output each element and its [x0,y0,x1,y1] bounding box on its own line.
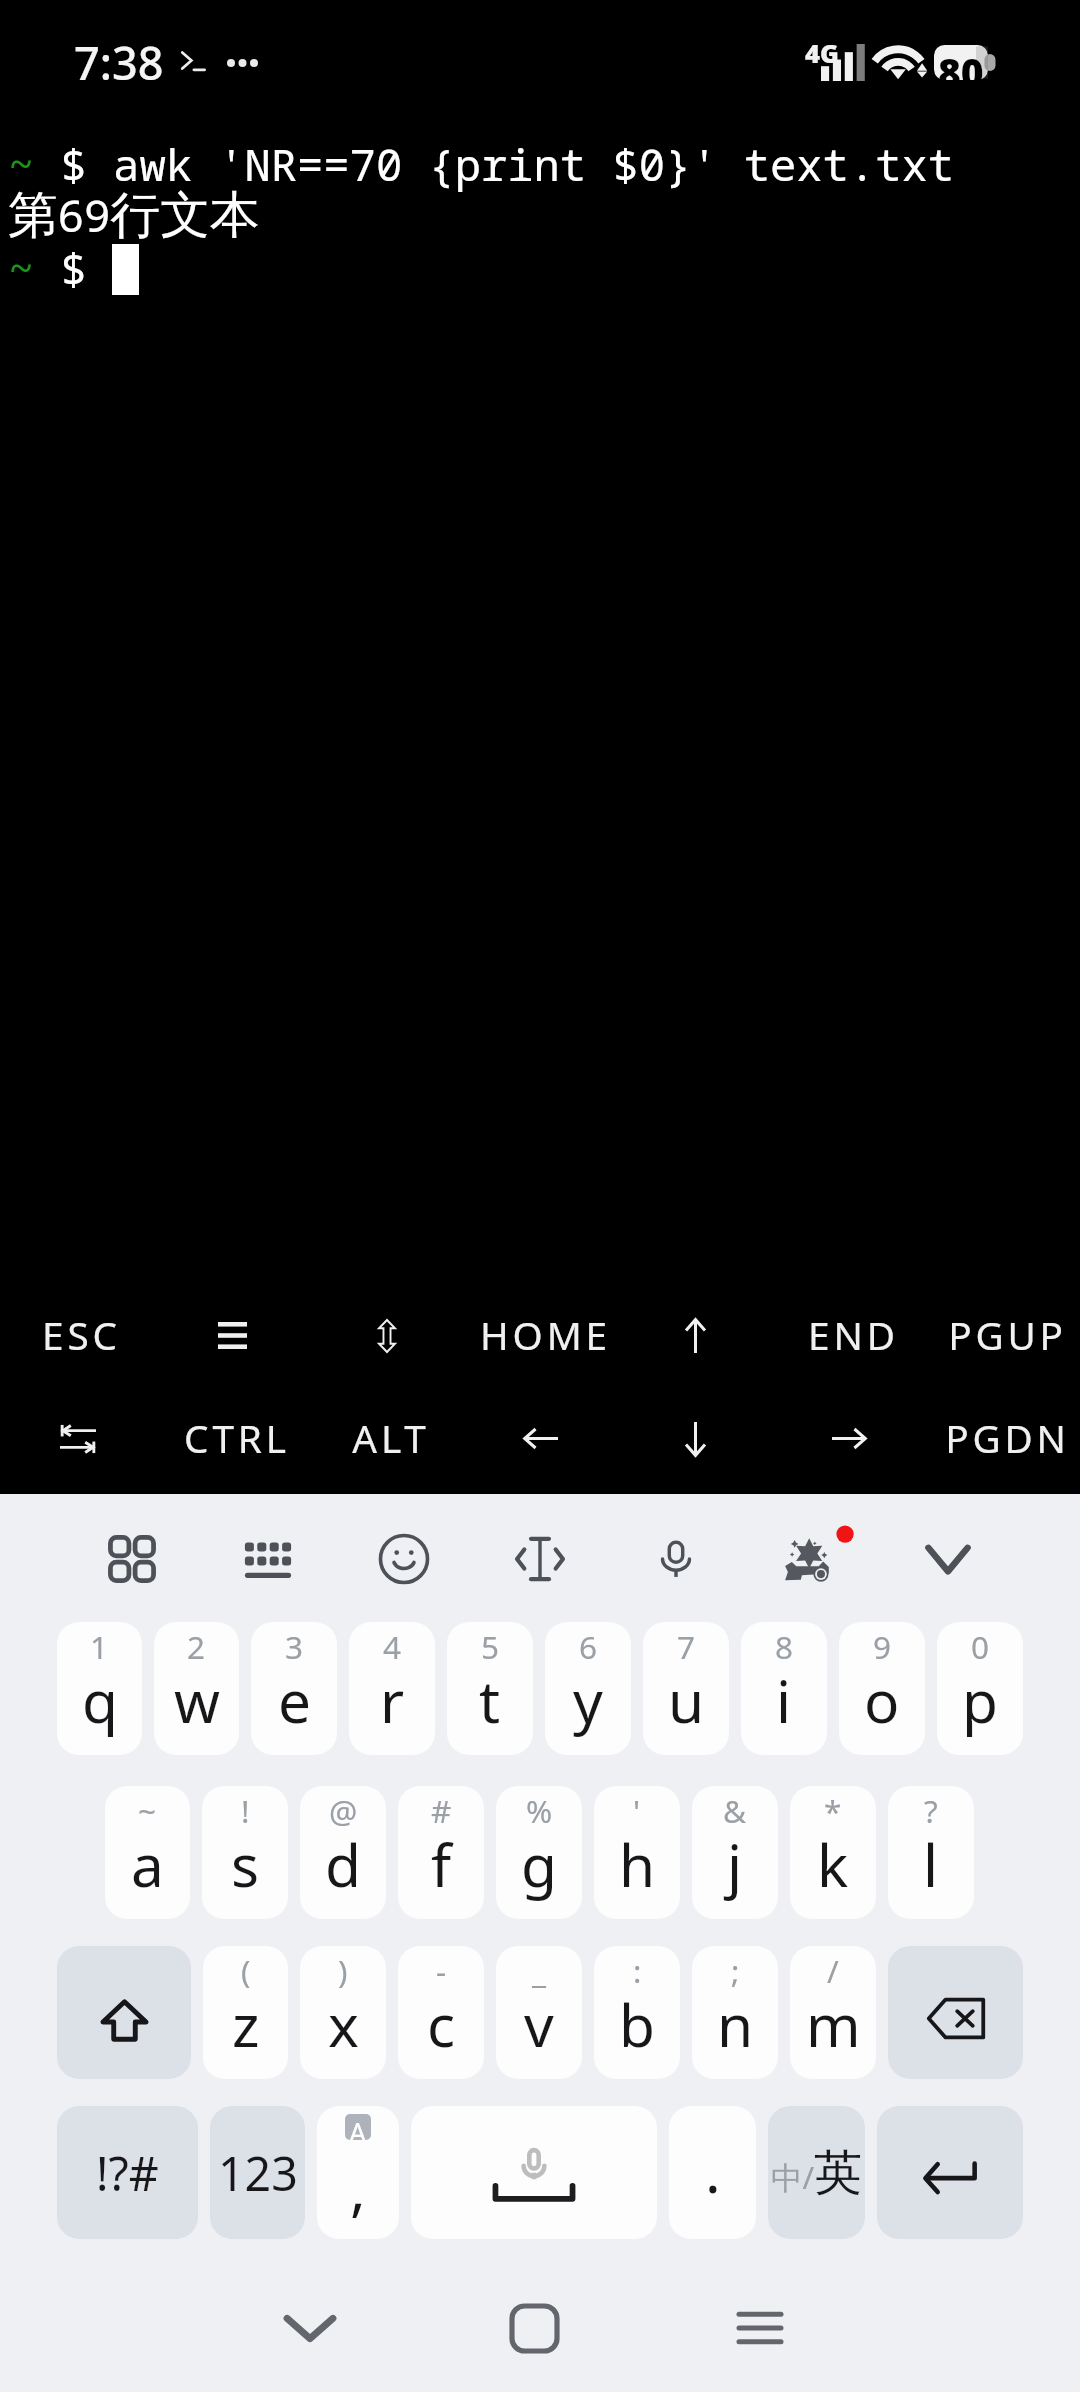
button[interactable]: HOME [464,1284,618,1387]
button[interactable]: Switch language [768,2106,865,2239]
staticText: ( [241,1949,251,1992]
button[interactable]: 123 [210,2106,305,2239]
staticText: ESC [42,1309,121,1362]
button[interactable]: Stickers [744,1494,880,1624]
staticText: : [633,1949,642,1992]
staticText: 4 [383,1625,402,1668]
staticText: - [436,1949,447,1992]
button[interactable]: !?# [57,2106,198,2239]
staticText: 1 [90,1625,109,1668]
button[interactable]: ESC [0,1284,155,1387]
button[interactable]: DOWN [618,1387,772,1490]
staticText: 中/英 [771,2143,863,2203]
button[interactable]: Shift [57,1946,191,2079]
staticText: e [278,1660,311,1740]
button[interactable]: Backspace [888,1946,1023,2079]
button[interactable]: h [594,1786,680,1919]
staticText: h [619,1824,656,1904]
staticText: a [131,1824,164,1904]
staticText: l [923,1824,939,1904]
button[interactable]: m [790,1946,876,2079]
button[interactable]: w [154,1622,239,1755]
staticText: A [349,2114,367,2140]
staticText: k [817,1824,849,1904]
button[interactable]: Apps [64,1494,200,1624]
staticText: ? [924,1789,938,1832]
button[interactable]: j [692,1786,778,1919]
button[interactable]: UPDOWN [310,1284,464,1387]
button[interactable]: n [692,1946,778,2079]
staticText: m [806,1984,861,2064]
staticText: END [808,1309,899,1362]
button[interactable]: y [545,1622,631,1755]
staticText: ~ $ awk 'NR==70 {print $0}' text.txt 第69… [8,134,955,298]
staticText: d [325,1824,361,1904]
button[interactable]: t [447,1622,533,1755]
staticText: b [619,1984,655,2064]
button[interactable]: o [839,1622,925,1755]
staticText: 4G [805,36,839,71]
button[interactable]: v [496,1946,582,2079]
button[interactable]: Space [411,2106,657,2239]
button[interactable]: l [888,1786,974,1919]
button[interactable]: b [594,1946,680,2079]
staticText: ~ [138,1789,157,1832]
staticText: y [573,1660,603,1740]
staticText: ' [633,1789,641,1832]
button[interactable]: Hide keyboard [880,1494,1016,1624]
button[interactable]: f [398,1786,484,1919]
staticText: 123 [218,2141,298,2204]
staticText: PGUP [948,1309,1067,1362]
staticText: 7 [677,1625,696,1668]
staticText: w [174,1660,220,1740]
button[interactable]: d [300,1786,386,1919]
button[interactable]: Back [197,2268,422,2388]
staticText: , [350,2147,366,2227]
staticText: 9 [873,1625,892,1668]
button[interactable]: i [741,1622,827,1755]
button[interactable]: PGUP [926,1284,1080,1387]
button[interactable]: e [251,1622,337,1755]
button[interactable]: Enter [877,2106,1023,2239]
staticText: 2 [187,1625,206,1668]
staticText: _ [532,1949,546,1992]
button[interactable]: x [300,1946,386,2079]
button[interactable]: z [203,1946,288,2079]
staticText: 3 [285,1625,304,1668]
staticText: * [824,1789,842,1832]
button[interactable]: c [398,1946,484,2079]
staticText: t [479,1660,501,1740]
button[interactable]: MENU [155,1284,310,1387]
button[interactable]: g [496,1786,582,1919]
button[interactable]: k [790,1786,876,1919]
button[interactable]: Home [422,2268,647,2388]
staticText: v [524,1984,554,2064]
button[interactable]: p [937,1622,1023,1755]
button[interactable]: r [349,1622,435,1755]
button[interactable]: ALT [310,1387,464,1490]
button[interactable]: u [643,1622,729,1755]
button[interactable]: comma [317,2106,399,2239]
button[interactable]: RIGHT [772,1387,926,1490]
button[interactable]: END [772,1284,926,1387]
button[interactable]: Emoji [336,1494,472,1624]
button[interactable]: LEFT [464,1387,618,1490]
button[interactable]: Voice input [608,1494,744,1624]
staticText: i [776,1660,792,1740]
staticText: @ [329,1789,358,1832]
staticText: 6 [579,1625,598,1668]
button[interactable]: TAB [0,1387,155,1490]
button[interactable]: a [105,1786,190,1919]
button[interactable]: Recents [647,2268,872,2388]
button[interactable]: UP [618,1284,772,1387]
button[interactable]: PGDN [926,1387,1080,1490]
button[interactable]: s [202,1786,288,1919]
button[interactable]: CTRL [155,1387,310,1490]
staticText: & [723,1789,747,1832]
button[interactable]: Keyboard layout [200,1494,336,1624]
button[interactable]: period [669,2106,756,2239]
staticText: 80 [938,45,984,98]
button[interactable]: q [57,1622,142,1755]
staticText: n [717,1984,754,2064]
button[interactable]: Cursor control [472,1494,608,1624]
